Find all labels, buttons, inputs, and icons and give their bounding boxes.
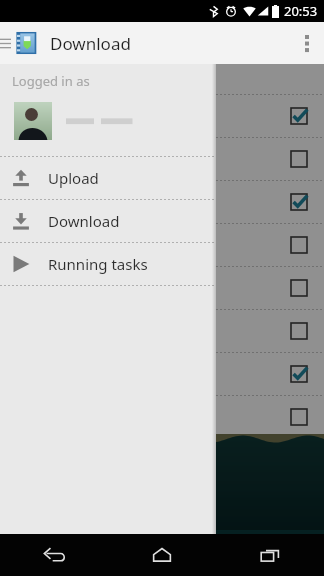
staticText: Download (48, 211, 120, 231)
button[interactable]: Not selected (0, 396, 324, 438)
button[interactable]: Open navigation drawer (0, 22, 12, 64)
staticText: Running tasks (48, 254, 148, 274)
staticText: Upload (48, 168, 99, 188)
button[interactable]: Selected (0, 181, 324, 223)
button[interactable]: Not selected (0, 267, 324, 309)
button[interactable]: Not selected (0, 310, 324, 352)
button[interactable]: Not selected (291, 151, 307, 167)
button[interactable]: Not selected (291, 237, 307, 253)
button[interactable] (0, 96, 216, 146)
staticText: Download (0, 68, 93, 90)
button[interactable]: Running tasks (0, 243, 216, 285)
button[interactable]: Recent apps (216, 534, 324, 576)
staticText: Logged in as (12, 72, 90, 90)
staticText: Download (50, 32, 131, 55)
button[interactable]: Download (0, 200, 216, 242)
button[interactable]: Home (108, 534, 216, 576)
button[interactable]: Selected (0, 95, 324, 137)
button[interactable]: Not selected (0, 224, 324, 266)
button[interactable]: Back (0, 534, 108, 576)
button[interactable]: More options (290, 22, 324, 64)
button[interactable]: Selected (0, 353, 324, 395)
staticText: 20:53 (284, 2, 318, 20)
button[interactable]: Selected (291, 108, 307, 124)
button[interactable]: Upload (0, 157, 216, 199)
button[interactable]: Selected (291, 194, 307, 210)
button[interactable]: Not selected (0, 138, 324, 180)
button[interactable]: Selected (291, 366, 307, 382)
button[interactable]: Not selected (291, 409, 307, 425)
button[interactable]: Not selected (291, 323, 307, 339)
button[interactable]: Not selected (291, 280, 307, 296)
